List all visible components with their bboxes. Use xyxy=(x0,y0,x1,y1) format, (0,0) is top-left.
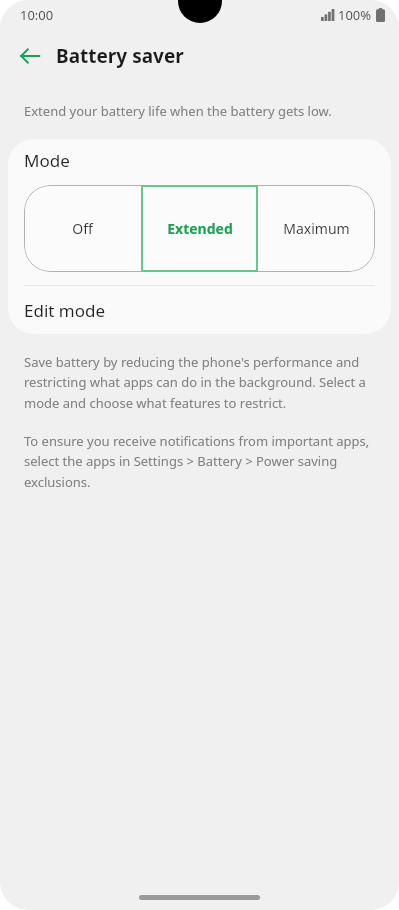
staticText: Off xyxy=(72,219,93,238)
button[interactable]: Off xyxy=(24,185,141,272)
staticText: 100% xyxy=(338,6,372,24)
staticText: To ensure you receive notifications from… xyxy=(24,432,373,491)
staticText: Battery saver xyxy=(56,43,184,69)
staticText: Extend your battery life when the batter… xyxy=(24,102,332,120)
button[interactable]: Edit mode xyxy=(8,286,391,334)
staticText: Extended xyxy=(167,219,233,238)
button[interactable]: Extended xyxy=(141,185,258,272)
staticText: Maximum xyxy=(283,219,350,238)
button[interactable]: Back xyxy=(8,34,52,78)
staticText: Save battery by reducing the phone's per… xyxy=(24,353,379,412)
staticText: Edit mode xyxy=(24,299,106,322)
button[interactable]: Maximum xyxy=(258,185,375,272)
staticText: Mode xyxy=(24,149,70,172)
staticText: 10:00 xyxy=(20,6,54,24)
